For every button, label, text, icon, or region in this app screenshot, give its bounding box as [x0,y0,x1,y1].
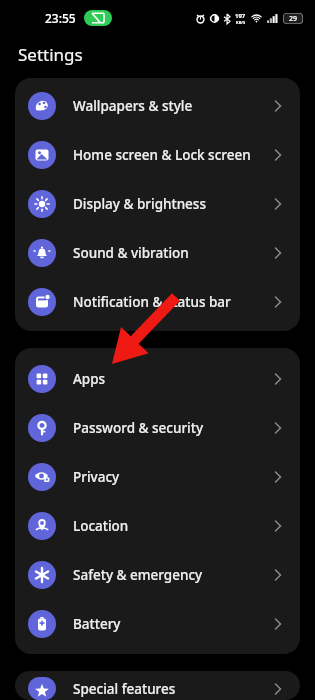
staticText: 23:55 [45,10,76,26]
staticText: Safety & emergency [73,566,270,584]
staticText: Privacy [73,468,270,486]
staticText: Display & brightness [73,195,270,213]
button[interactable]: Safety & emergency [15,550,300,599]
button[interactable]: Display & brightness [15,179,300,228]
button[interactable]: Location [15,501,300,550]
staticText: Sound & vibration [73,244,270,262]
staticText: Location [73,517,270,535]
staticText: Apps [73,370,270,388]
staticText: Special features [73,680,270,698]
staticText: 29 [289,14,298,24]
button[interactable]: Wallpapers & style [15,81,300,130]
button[interactable]: Special features [15,677,300,700]
staticText: Home screen & Lock screen [73,146,270,164]
staticText: 197 [235,12,246,20]
button[interactable]: Notification & status bar [15,277,300,326]
staticText: KB/S [236,20,246,25]
button[interactable]: Password & security [15,403,300,452]
button[interactable]: Battery [15,599,300,648]
staticText: Settings [18,43,83,66]
button[interactable]: Apps [15,354,300,403]
button[interactable]: Home screen & Lock screen [15,130,300,179]
staticText: Notification & status bar [73,293,270,311]
button[interactable]: Sound & vibration [15,228,300,277]
staticText: Battery [73,615,270,633]
staticText: Wallpapers & style [73,97,270,115]
staticText: Password & security [73,419,270,437]
button[interactable]: Privacy [15,452,300,501]
